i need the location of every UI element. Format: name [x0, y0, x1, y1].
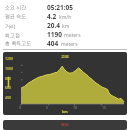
- staticText: 0: [19, 105, 22, 110]
- button[interactable]: Elevation profile chart: [3, 52, 127, 115]
- staticText: 소요 시간: [5, 4, 47, 11]
- staticText: 600: [5, 85, 18, 90]
- button[interactable]: Speed chart: [3, 120, 127, 130]
- staticText: 4.2: [47, 12, 57, 21]
- button[interactable]: 평균 속도: [5, 12, 126, 21]
- button[interactable]: 소요 시간: [5, 3, 126, 12]
- staticText: 20.4: [47, 21, 60, 30]
- staticText: km/h: [59, 14, 72, 21]
- staticText: meters: [61, 41, 78, 48]
- staticText: km: [62, 109, 68, 114]
- staticText: 1190: [47, 30, 62, 39]
- staticText: 거리: [5, 23, 47, 29]
- staticText: 1200: [5, 56, 18, 61]
- staticText: 평균 속도: [5, 13, 47, 20]
- staticText: 404: [47, 39, 59, 48]
- button[interactable]: 최고점: [5, 30, 126, 39]
- button[interactable]: 총 획득고도: [5, 39, 126, 48]
- staticText: 10: [73, 105, 78, 110]
- staticText: meters: [64, 32, 81, 39]
- staticText: km: [62, 23, 70, 30]
- staticText: 05:21:05: [47, 3, 73, 12]
- staticText: 최고점: [5, 32, 47, 38]
- staticText: 5: [46, 105, 49, 110]
- button[interactable]: 거리: [5, 21, 126, 30]
- staticText: 속도: [61, 122, 69, 127]
- staticText: 1000: [5, 66, 18, 71]
- staticText: 고도: [61, 54, 69, 59]
- staticText: 총 획득고도: [5, 40, 47, 47]
- staticText: 800: [5, 76, 18, 81]
- staticText: 15: [102, 105, 107, 110]
- staticText: 400: [5, 95, 18, 100]
